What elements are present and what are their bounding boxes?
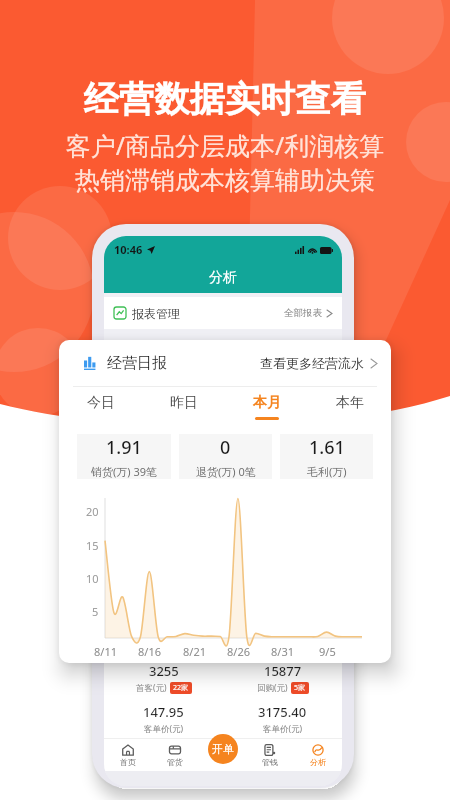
staticText: 今日 <box>87 394 115 412</box>
staticText: 客单价(元) <box>263 723 303 735</box>
staticText: 1.91 <box>106 435 142 460</box>
staticText: 22家 <box>173 683 189 693</box>
button[interactable]: 本月 <box>225 387 308 426</box>
staticText: 8/11 <box>94 644 117 659</box>
staticText: 毛利(万) <box>307 464 347 479</box>
button[interactable]: 0 <box>179 434 272 479</box>
button[interactable]: 今日 <box>59 387 142 426</box>
staticText: 8/26 <box>227 644 250 659</box>
staticText: 经营日报 <box>107 354 167 373</box>
staticText: 客户/商品分层成本/利润核算 <box>0 128 450 162</box>
staticText: 本月 <box>253 394 281 412</box>
staticText: 管货 <box>167 757 183 767</box>
button[interactable]: 1.61 <box>280 434 373 479</box>
button[interactable]: 查看更多经营流水 <box>260 355 377 371</box>
staticText: 8/31 <box>271 644 294 659</box>
staticText: 8/21 <box>183 644 206 659</box>
button[interactable]: 147.95 <box>104 703 223 735</box>
staticText: 首页 <box>120 757 136 767</box>
button[interactable]: 3175.40 <box>223 703 342 735</box>
button[interactable]: 开单 <box>208 734 238 764</box>
staticText: 0 <box>220 435 231 460</box>
button[interactable]: 3255 <box>104 662 223 694</box>
staticText: 15 <box>86 538 99 553</box>
staticText: 昨日 <box>170 394 198 412</box>
staticText: 147.95 <box>143 703 184 721</box>
staticText: 分析 <box>310 757 326 767</box>
staticText: 3255 <box>149 662 179 680</box>
staticText: 开单 <box>212 742 234 756</box>
staticText: 9/5 <box>319 644 336 659</box>
staticText: 销货(万) 39笔 <box>91 464 158 479</box>
staticText: 15877 <box>264 662 302 680</box>
staticText: 5家 <box>294 683 306 693</box>
button[interactable]: 15877 <box>223 662 342 694</box>
button[interactable]: 1.91 <box>77 434 171 479</box>
staticText: 分析 <box>209 269 237 287</box>
button[interactable]: 报表管理 <box>104 297 342 329</box>
staticText: 20 <box>86 504 99 519</box>
staticText: 退货(万) 0笔 <box>196 464 256 479</box>
button[interactable]: 昨日 <box>142 387 225 426</box>
staticText: 报表管理 <box>132 306 180 321</box>
staticText: 首客(元) <box>136 682 167 694</box>
button[interactable]: 管钱 <box>246 738 294 771</box>
staticText: 1.61 <box>309 435 345 460</box>
button[interactable]: 分析 <box>294 738 342 771</box>
staticText: 经营数据实时查看 <box>0 77 450 121</box>
staticText: 3175.40 <box>258 703 307 721</box>
staticText: 本年 <box>336 394 364 412</box>
button[interactable]: 管货 <box>151 738 198 771</box>
staticText: 10 <box>86 571 99 586</box>
staticText: 回购(元) <box>257 682 288 694</box>
staticText: 管钱 <box>262 757 278 767</box>
staticText: 查看更多经营流水 <box>260 355 364 371</box>
button[interactable]: 首页 <box>104 738 151 771</box>
staticText: 客单价(元) <box>144 723 184 735</box>
staticText: 热销滞销成本核算辅助决策 <box>0 165 450 196</box>
staticText: 5 <box>92 604 99 619</box>
staticText: 10:46 <box>114 242 143 257</box>
button[interactable]: 本年 <box>308 387 391 426</box>
staticText: 8/16 <box>138 644 161 659</box>
staticText: 全部报表 <box>284 307 322 319</box>
